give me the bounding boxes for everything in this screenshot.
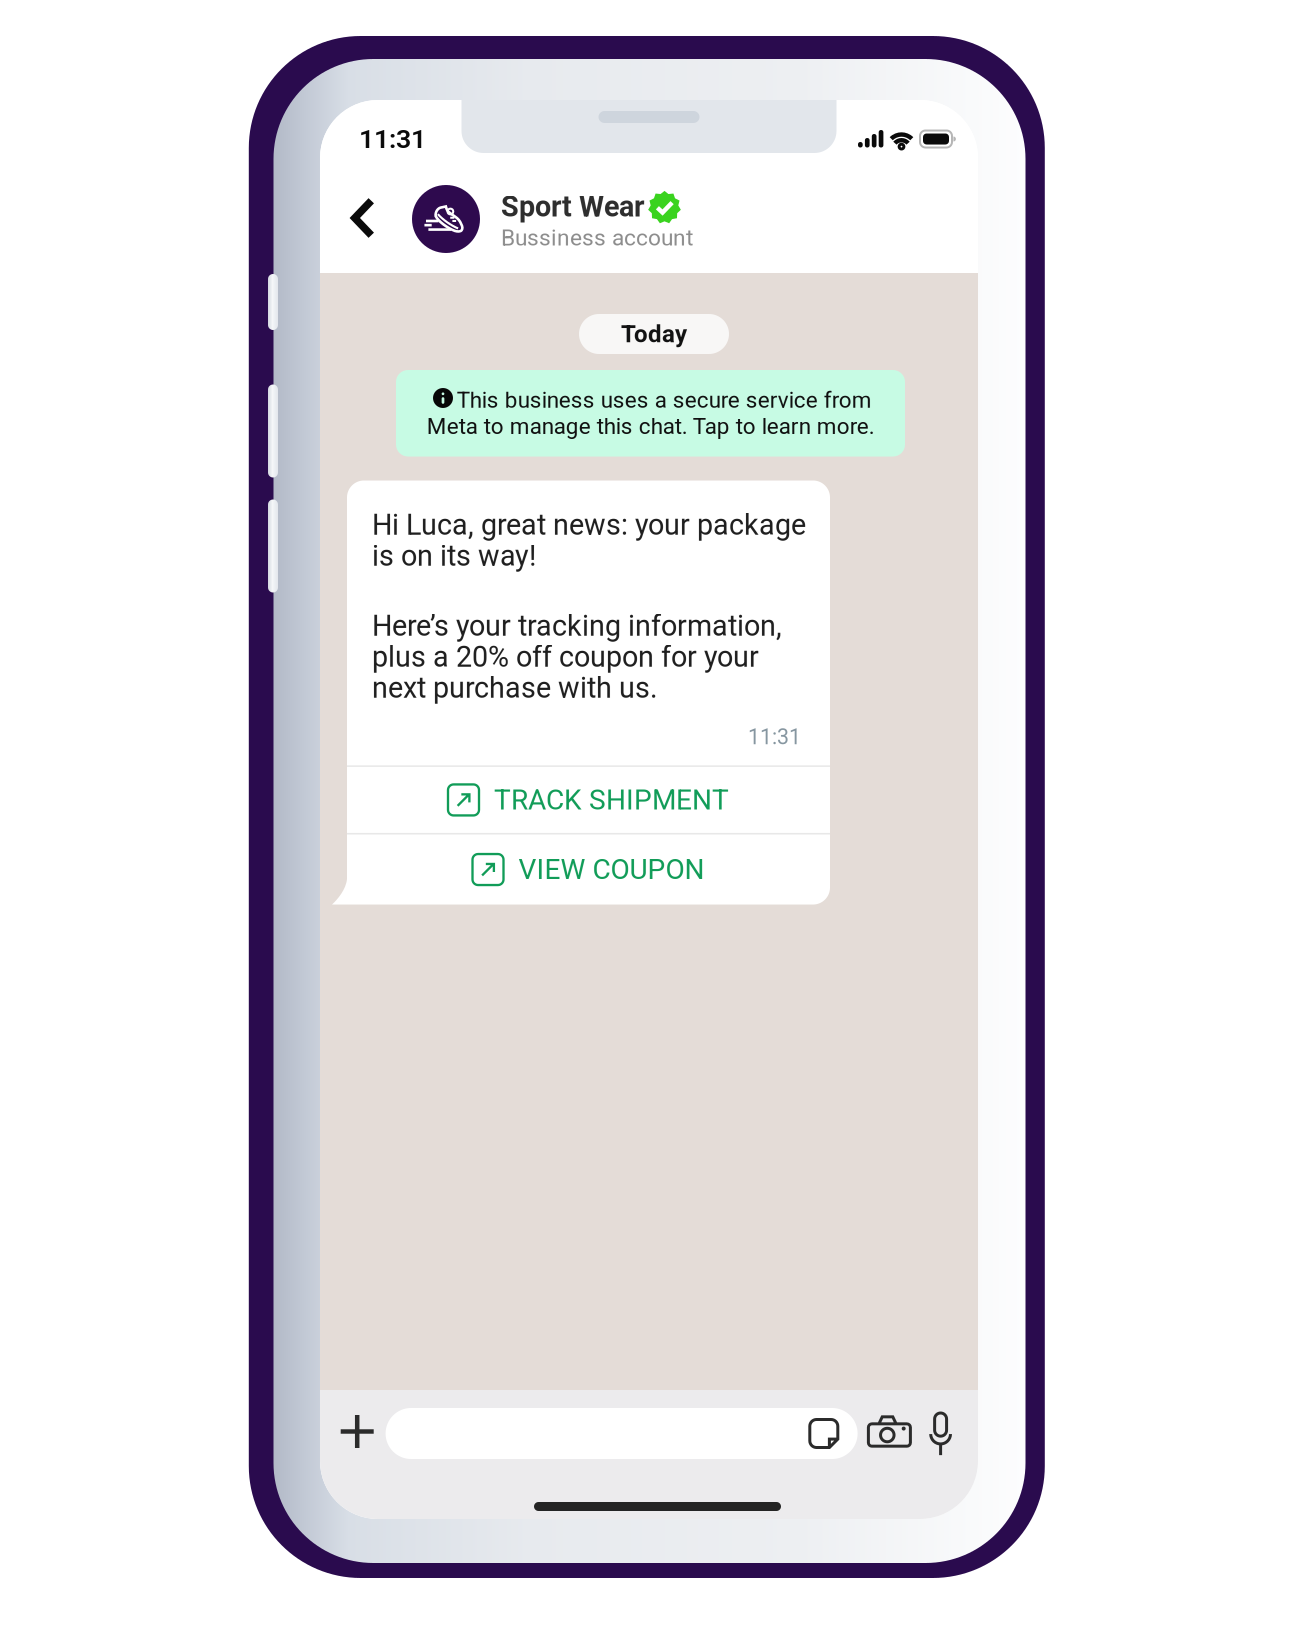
staticText: Bussiness account: [501, 224, 693, 251]
button[interactable]: Today: [579, 314, 729, 354]
button[interactable]: Type a message: [386, 1408, 858, 1459]
button[interactable]: Stickers: [798, 1407, 850, 1459]
staticText: 11:31: [359, 123, 426, 155]
button[interactable]: Camera: [856, 1405, 922, 1458]
button[interactable]: Attach: [327, 1401, 388, 1462]
staticText: Sport Wear: [501, 190, 644, 223]
button[interactable]: TRACK SHIPMENT: [347, 767, 830, 833]
button[interactable]: Sport Wear: [412, 185, 1070, 253]
button[interactable]: VIEW COUPON: [347, 834, 830, 904]
button[interactable]: This business uses a secure service from…: [396, 370, 905, 456]
staticText: Today: [621, 320, 687, 348]
button[interactable]: Voice message: [916, 1401, 966, 1467]
button[interactable]: Back: [332, 183, 394, 253]
staticText: Here’s your tracking information, plus a…: [372, 611, 782, 703]
staticText: Hi Luca, great news: your package is on …: [372, 509, 806, 571]
staticText: TRACK SHIPMENT: [494, 783, 729, 816]
staticText: 11:31: [748, 724, 801, 749]
staticText: This business uses a secure service from…: [426, 387, 874, 439]
staticText: VIEW COUPON: [518, 853, 704, 886]
